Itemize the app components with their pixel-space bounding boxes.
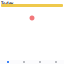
staticText: Today <box>1 0 13 6</box>
button[interactable]: Tab <box>0 60 16 64</box>
button[interactable]: Tab <box>48 60 64 64</box>
staticText: 9:41 <box>1 0 4 2</box>
button[interactable]: Tab <box>32 60 48 64</box>
button[interactable]: Tab <box>16 60 32 64</box>
